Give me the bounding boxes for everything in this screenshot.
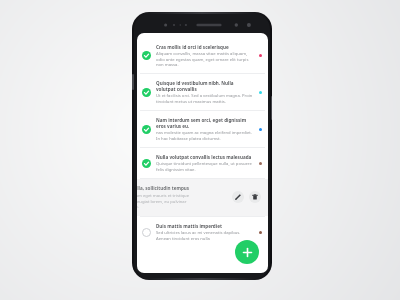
button[interactable]: Completed bbox=[142, 51, 151, 60]
staticText: Nulla volutpat convallis lectus malesuad… bbox=[156, 154, 252, 160]
button[interactable]: Completed bbox=[137, 148, 268, 178]
button[interactable]: Completed bbox=[137, 74, 268, 110]
staticText: Duis mattis mattis imperdiet bbox=[156, 223, 222, 229]
button[interactable]: Add task bbox=[235, 240, 259, 264]
button[interactable]: Delete bbox=[249, 191, 261, 203]
staticText: Aliquam convallis, massa vitae mattis al… bbox=[156, 51, 254, 67]
button[interactable]: Mark complete bbox=[142, 228, 151, 237]
button[interactable]: Mark complete bbox=[137, 217, 268, 247]
button[interactable]: Completed bbox=[142, 88, 151, 97]
staticText: Cras mollis id orci id scelerisque bbox=[156, 44, 229, 50]
staticText: Sed ultricies lacus ac mi venenatis dapi… bbox=[156, 230, 254, 241]
staticText: sa nulla, sollicitudin tempus bbox=[137, 185, 190, 191]
staticText: mentum eget mauris et tristique risus fe… bbox=[137, 193, 190, 209]
staticText: Quisque tincidunt pellentesque nulla, ut… bbox=[156, 161, 254, 172]
button[interactable]: Completed bbox=[142, 159, 151, 168]
button[interactable]: sa nulla, sollicitudin tempus bbox=[137, 179, 268, 216]
button[interactable]: Completed bbox=[142, 125, 151, 134]
button[interactable]: Edit bbox=[232, 191, 244, 203]
staticText: Ut et facilisis orci. Sed a vestibulum m… bbox=[156, 93, 254, 104]
staticText: nas molestie quam ac magna eleifend impe… bbox=[156, 130, 254, 141]
button[interactable]: Completed bbox=[137, 38, 268, 73]
button[interactable]: Completed bbox=[137, 111, 268, 147]
staticText: Nam interdum sem orci, eget dignissim er… bbox=[156, 117, 254, 129]
staticText: Quisque id vestibulum nibh. Nulla volutp… bbox=[156, 80, 254, 92]
